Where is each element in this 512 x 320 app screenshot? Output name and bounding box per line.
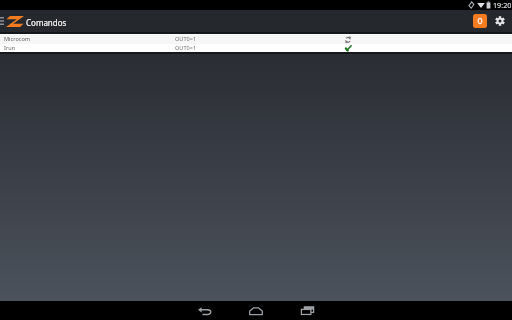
staticText: OUT0=1 bbox=[175, 44, 197, 52]
staticText: Irun bbox=[4, 44, 16, 52]
button[interactable]: Microcom bbox=[0, 35, 512, 44]
staticText: OUT0=1 bbox=[175, 35, 197, 43]
button[interactable]: Back bbox=[188, 301, 222, 320]
button[interactable]: Power bbox=[473, 14, 487, 28]
button[interactable]: Recents bbox=[290, 301, 324, 320]
button[interactable]: Menu bbox=[0, 10, 6, 32]
staticText: Comandos bbox=[26, 17, 67, 28]
staticText: Microcom bbox=[4, 35, 31, 43]
button[interactable]: Settings bbox=[493, 14, 507, 28]
button[interactable]: Home bbox=[239, 301, 273, 320]
button[interactable]: Irun bbox=[0, 44, 512, 52]
staticText: 19:20 bbox=[493, 0, 512, 10]
